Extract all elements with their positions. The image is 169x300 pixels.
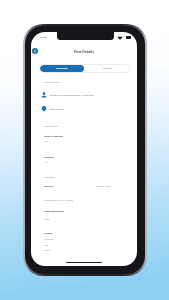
staticText: Monday [44, 185, 54, 188]
staticText: Asia [44, 244, 49, 247]
staticText: Personal Details [44, 81, 60, 84]
staticText: kamlesh.kamlesh@gmail.com, 9246478922 [50, 94, 95, 97]
staticText: N/A [44, 140, 48, 143]
staticText: Health Details [44, 125, 58, 128]
staticText: Language & Cultural Customs [44, 199, 74, 202]
staticText: Availability [44, 176, 55, 179]
button[interactable]: Back [32, 48, 38, 54]
staticText: Language Spoken [44, 210, 65, 213]
staticText: N/A [44, 161, 48, 164]
staticText: Allergies [44, 156, 54, 159]
staticText: Africa [44, 249, 50, 252]
button[interactable]: Post Detail [40, 65, 84, 72]
staticText: 12:19 [40, 35, 47, 38]
staticText: Post Details [74, 49, 95, 54]
staticText: Uttar pradesh [50, 108, 65, 111]
staticText: Health Problems [44, 135, 64, 138]
staticText: Hindi [44, 218, 50, 221]
staticText: Post Detail [56, 67, 68, 70]
staticText: 09:30 to 20:00 [96, 185, 111, 188]
button[interactable]: Requests [85, 64, 131, 73]
staticText: Requests [103, 67, 113, 70]
staticText: Australia [44, 238, 54, 241]
staticText: Cuisine [44, 232, 53, 235]
